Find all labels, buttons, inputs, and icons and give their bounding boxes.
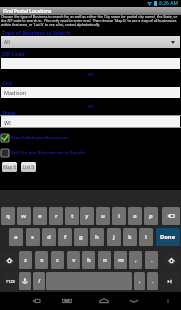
button[interactable]: s <box>26 228 40 246</box>
button[interactable]: q <box>1 207 15 225</box>
staticText: ZIP Code <box>2 50 25 57</box>
button[interactable]: d <box>42 228 56 246</box>
staticText: i <box>118 212 120 220</box>
button[interactable]: w <box>17 207 31 225</box>
staticText: v <box>72 256 76 264</box>
staticText: , <box>135 256 137 264</box>
staticText: k <box>128 233 132 241</box>
button[interactable]: y <box>80 207 94 225</box>
staticText: g <box>79 233 83 241</box>
button[interactable]: u <box>96 207 110 225</box>
staticText: c <box>56 256 60 264</box>
button[interactable]: Madison <box>1 87 180 98</box>
staticText: Done <box>160 233 176 241</box>
staticText: h <box>95 233 99 241</box>
staticText: r <box>55 212 58 220</box>
button[interactable]: x <box>35 251 48 269</box>
button[interactable]: . <box>145 251 158 269</box>
staticText: u <box>101 212 105 220</box>
staticText: / <box>38 277 41 285</box>
staticText: , <box>139 278 141 285</box>
button[interactable]: v <box>67 251 80 269</box>
button[interactable]: n <box>98 251 111 269</box>
staticText: n <box>103 256 107 264</box>
staticText: or <box>88 70 94 77</box>
button[interactable]: z <box>19 251 32 269</box>
staticText: State <box>2 109 16 116</box>
staticText: Search Anti-gun Businesses <box>11 135 69 141</box>
button[interactable]: ?123 <box>2 272 18 290</box>
staticText: . <box>151 256 153 264</box>
staticText: ?123 <box>6 279 15 284</box>
staticText: Choose the type of Business to search fo… <box>1 14 180 27</box>
staticText: x <box>40 256 44 264</box>
button[interactable]: j <box>107 228 121 246</box>
button[interactable]: b <box>82 251 95 269</box>
staticText: z <box>24 256 27 264</box>
staticText: d <box>47 233 51 241</box>
staticText: Madison <box>4 89 27 96</box>
button[interactable]: Voice input <box>19 272 31 290</box>
button[interactable]: Map It <box>2 162 17 172</box>
button[interactable]: , <box>134 272 145 290</box>
button[interactable]: Search Anti-gun Businesses <box>1 133 181 142</box>
staticText: s <box>31 233 35 241</box>
button[interactable]: Shift <box>163 251 180 269</box>
button[interactable]: a <box>9 228 23 246</box>
staticText: Type of Business to Search <box>2 29 71 36</box>
staticText: All <box>4 39 10 46</box>
staticText: e <box>38 212 42 220</box>
staticText: or <box>88 102 94 109</box>
button[interactable]: WI <box>1 116 180 128</box>
button[interactable]: l <box>139 228 153 246</box>
button[interactable]: , <box>129 251 142 269</box>
button[interactable]: / <box>33 272 45 290</box>
button[interactable]: h <box>90 228 104 246</box>
staticText: b <box>87 256 91 264</box>
button[interactable]: List It <box>21 162 36 172</box>
staticText: a <box>14 233 18 241</box>
button[interactable]: . <box>147 272 158 290</box>
staticText: p <box>149 212 153 220</box>
button[interactable]: All <box>1 36 180 48</box>
button[interactable]: Go <box>159 272 180 290</box>
staticText: WI <box>4 119 11 126</box>
staticText: Map It <box>3 164 17 170</box>
button[interactable]: Home <box>97 292 111 310</box>
button[interactable]: t <box>65 207 79 225</box>
staticText: m <box>118 256 124 264</box>
button[interactable]: r <box>49 207 63 225</box>
button[interactable]: g <box>74 228 88 246</box>
button[interactable]: m <box>114 251 127 269</box>
button[interactable]: c <box>51 251 64 269</box>
button[interactable]: o <box>128 207 142 225</box>
button[interactable]: Back <box>127 292 141 310</box>
button[interactable]: i <box>112 207 126 225</box>
staticText: q <box>6 212 10 220</box>
button[interactable]: Shift <box>1 251 18 269</box>
staticText: l <box>145 233 147 241</box>
button[interactable]: Done <box>156 228 180 246</box>
button[interactable]: k <box>123 228 137 246</box>
staticText: 8:26 AM <box>159 0 179 6</box>
button[interactable]: p <box>144 207 158 225</box>
staticText: List It <box>23 164 35 170</box>
button[interactable]: e <box>33 207 47 225</box>
staticText: j <box>113 233 115 241</box>
staticText: Find Postal Locations <box>3 8 52 14</box>
button[interactable]: Switch keyboard <box>60 292 74 310</box>
staticText: o <box>133 212 137 220</box>
button[interactable]: Hide keyboard <box>29 292 43 310</box>
staticText: w <box>21 212 27 220</box>
staticText: City <box>2 79 13 86</box>
button[interactable]: f <box>58 228 72 246</box>
staticText: y <box>85 212 89 220</box>
staticText: . <box>152 278 154 285</box>
button[interactable]: Menu <box>161 292 175 310</box>
staticText: t <box>71 212 74 220</box>
staticText: Add Pro-gun Alternatives to Results <box>11 150 86 156</box>
button[interactable]: Add Pro-gun Alternatives to Results <box>1 148 181 157</box>
button[interactable]: Backspace <box>162 207 180 225</box>
